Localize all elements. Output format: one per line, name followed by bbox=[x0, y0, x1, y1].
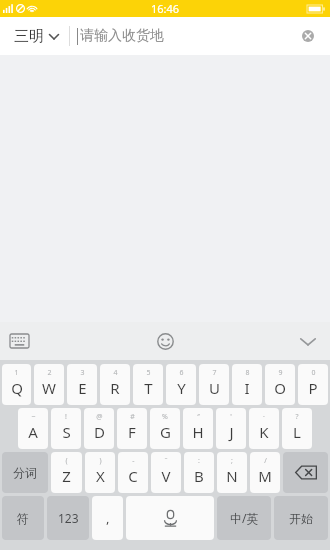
staticText: · bbox=[263, 412, 265, 422]
button[interactable]: ; bbox=[217, 452, 247, 493]
staticText: # bbox=[130, 412, 135, 422]
staticText: E bbox=[78, 378, 87, 398]
button[interactable]: 7 bbox=[199, 364, 229, 405]
staticText: 1 bbox=[14, 368, 19, 378]
staticText: 123 bbox=[58, 510, 79, 526]
button[interactable]: 开始 bbox=[274, 496, 328, 540]
staticText: B bbox=[194, 466, 204, 486]
staticText: A bbox=[28, 422, 38, 442]
staticText: Z bbox=[62, 466, 71, 486]
staticText: ″ bbox=[197, 412, 200, 422]
staticText: W bbox=[42, 378, 56, 398]
staticText: ( bbox=[65, 456, 68, 466]
staticText: D bbox=[94, 422, 105, 442]
staticText: 9 bbox=[278, 368, 283, 378]
staticText: 6 bbox=[179, 368, 184, 378]
button[interactable]: 0 bbox=[298, 364, 328, 405]
staticText: ~ bbox=[31, 412, 36, 422]
button[interactable]: Voice input bbox=[126, 496, 214, 540]
staticText: 三明 bbox=[14, 27, 44, 46]
staticText: S bbox=[62, 422, 71, 442]
button[interactable]: 2 bbox=[34, 364, 64, 405]
button[interactable]: Keyboard layout bbox=[0, 328, 39, 354]
button[interactable]: % bbox=[150, 408, 180, 449]
staticText: P bbox=[308, 378, 318, 398]
button[interactable]: 8 bbox=[232, 364, 262, 405]
button[interactable]: 4 bbox=[100, 364, 130, 405]
staticText: J bbox=[229, 422, 234, 442]
button[interactable]: 123 bbox=[47, 496, 89, 540]
button[interactable]: 三明 bbox=[0, 21, 69, 52]
staticText: ˜ bbox=[164, 456, 168, 466]
staticText: 分词 bbox=[13, 465, 37, 480]
button[interactable]: ″ bbox=[183, 408, 213, 449]
staticText: X bbox=[96, 466, 105, 486]
button[interactable]: 分词 bbox=[2, 452, 48, 493]
button[interactable]: 1 bbox=[2, 364, 31, 405]
staticText: ? bbox=[295, 412, 299, 422]
button[interactable]: ( bbox=[51, 452, 82, 493]
button[interactable]: ˜ bbox=[151, 452, 181, 493]
staticText: N bbox=[226, 466, 238, 486]
button[interactable]: 6 bbox=[166, 364, 196, 405]
button[interactable]: ! bbox=[51, 408, 81, 449]
staticText: O bbox=[274, 378, 286, 398]
staticText: 8 bbox=[245, 368, 250, 378]
button[interactable]: · bbox=[249, 408, 279, 449]
staticText: T bbox=[144, 378, 153, 398]
button[interactable]: / bbox=[250, 452, 280, 493]
button[interactable]: 3 bbox=[67, 364, 97, 405]
staticText: 5 bbox=[146, 368, 151, 378]
staticText: Y bbox=[177, 378, 186, 398]
button[interactable]: 符 bbox=[2, 496, 44, 540]
staticText: 开始 bbox=[289, 511, 313, 526]
staticText: 2 bbox=[47, 368, 52, 378]
staticText: 符 bbox=[17, 511, 29, 526]
button[interactable]: , bbox=[92, 496, 123, 540]
staticText: ! bbox=[65, 412, 67, 422]
staticText: V bbox=[161, 466, 171, 486]
staticText: ) bbox=[99, 456, 102, 466]
button[interactable]: ) bbox=[85, 452, 115, 493]
button[interactable]: @ bbox=[84, 408, 114, 449]
button[interactable]: - bbox=[118, 452, 148, 493]
staticText: F bbox=[128, 422, 136, 442]
button[interactable]: # bbox=[117, 408, 147, 449]
staticText: 7 bbox=[212, 368, 217, 378]
staticText: U bbox=[209, 378, 220, 398]
staticText: @ bbox=[96, 412, 103, 422]
staticText: - bbox=[132, 456, 135, 466]
button[interactable]: Hide keyboard bbox=[288, 329, 330, 354]
button[interactable]: : bbox=[184, 452, 214, 493]
staticText: ; bbox=[231, 456, 233, 466]
button[interactable]: 中/英 bbox=[217, 496, 271, 540]
staticText: I bbox=[244, 378, 250, 398]
staticText: Q bbox=[11, 378, 23, 398]
staticText: 3 bbox=[80, 368, 85, 378]
button[interactable]: Backspace bbox=[283, 452, 328, 493]
staticText: 4 bbox=[113, 368, 118, 378]
staticText: / bbox=[264, 456, 267, 466]
staticText: % bbox=[162, 412, 168, 422]
staticText: 0 bbox=[311, 368, 316, 378]
button[interactable]: 9 bbox=[265, 364, 295, 405]
button[interactable]: Emoji bbox=[149, 325, 182, 358]
staticText: M bbox=[258, 466, 272, 486]
staticText: K bbox=[259, 422, 269, 442]
staticText: ' bbox=[230, 412, 232, 422]
staticText: 16:46 bbox=[151, 1, 180, 16]
button[interactable]: ? bbox=[282, 408, 312, 449]
staticText: H bbox=[192, 422, 204, 442]
staticText: 中/英 bbox=[230, 510, 259, 526]
staticText: : bbox=[198, 456, 200, 466]
staticText: R bbox=[110, 378, 120, 398]
staticText: L bbox=[293, 422, 301, 442]
button[interactable]: 5 bbox=[133, 364, 163, 405]
staticText: G bbox=[160, 422, 171, 442]
button[interactable]: Clear bbox=[286, 24, 330, 48]
staticText: , bbox=[106, 509, 110, 527]
button[interactable]: ~ bbox=[18, 408, 48, 449]
staticText: C bbox=[128, 466, 138, 486]
button[interactable]: ' bbox=[216, 408, 246, 449]
staticText: 请输入收货地 bbox=[80, 27, 164, 45]
